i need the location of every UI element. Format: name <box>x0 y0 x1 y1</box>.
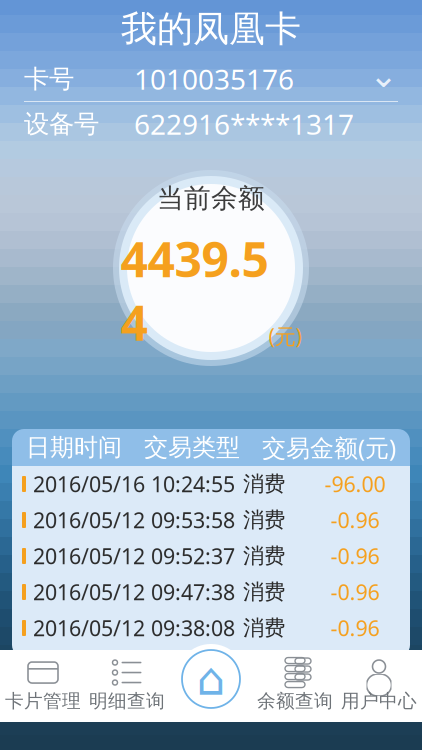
staticText: 设备号 <box>24 108 99 139</box>
staticText: 我的凤凰卡 <box>121 7 301 51</box>
staticText: -0.96 <box>330 614 379 642</box>
staticText: 用户中心 <box>341 689 417 712</box>
staticText: 消费 <box>243 543 285 569</box>
staticText: 当前余额 <box>157 182 265 215</box>
button[interactable]: 卡片管理 <box>1 654 85 718</box>
staticText: 2016/05/12 09:47:38 <box>33 578 235 606</box>
staticText: 622916****1317 <box>134 105 354 143</box>
staticText: 消费 <box>243 579 285 605</box>
staticText: 消费 <box>243 507 285 533</box>
staticText: 余额查询 <box>257 689 333 712</box>
staticText: 2016/05/12 09:52:37 <box>33 542 235 570</box>
button[interactable]: 用户中心 <box>337 654 421 718</box>
staticText: -0.96 <box>330 578 379 606</box>
staticText: 1010035176 <box>134 60 294 98</box>
button[interactable]: Home <box>174 642 248 716</box>
staticText: 明细查询 <box>89 689 165 712</box>
staticText: 卡号 <box>24 63 74 94</box>
button[interactable]: 余额查询 <box>253 654 337 718</box>
staticText: 交易金额(元) <box>262 432 396 463</box>
staticText: (元) <box>268 322 301 350</box>
staticText: 2016/05/12 09:53:58 <box>33 506 235 534</box>
staticText: ⌂ <box>196 653 225 705</box>
staticText: 消费 <box>243 615 285 641</box>
staticText: 消费 <box>243 471 285 497</box>
staticText: ⌄ <box>369 55 398 95</box>
staticText: 卡片管理 <box>5 689 81 712</box>
staticText: -0.96 <box>330 542 379 570</box>
staticText: 交易类型 <box>144 433 240 462</box>
staticText: -0.96 <box>330 506 379 534</box>
staticText: 日期时间 <box>26 433 122 462</box>
staticText: 2016/05/12 09:38:08 <box>33 614 235 642</box>
staticText: 4439.54 <box>120 227 268 354</box>
staticText: 2016/05/16 10:24:55 <box>33 470 235 498</box>
button[interactable]: 明细查询 <box>85 654 169 718</box>
staticText: -96.00 <box>324 470 385 498</box>
